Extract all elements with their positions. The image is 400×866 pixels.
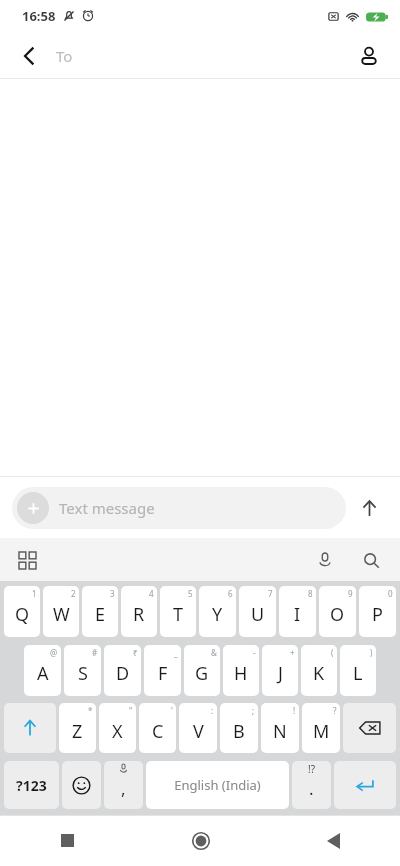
button[interactable]: 6 (199, 586, 236, 637)
staticText: * (88, 705, 93, 716)
button[interactable]: , (104, 761, 143, 809)
staticText: A (37, 661, 49, 686)
staticText: W (53, 602, 70, 627)
staticText: ' (171, 705, 173, 716)
button[interactable]: " (99, 703, 136, 753)
button[interactable]: - (223, 645, 259, 696)
staticText: O (330, 602, 345, 627)
button[interactable]: Emoji (62, 761, 101, 809)
staticText: ) (370, 647, 373, 658)
staticText: X (112, 719, 123, 744)
staticText: " (129, 705, 133, 716)
button[interactable]: Contacts (348, 35, 390, 77)
staticText: 6 (228, 588, 233, 599)
staticText: English (India) (174, 776, 261, 794)
staticText: I (294, 602, 301, 627)
staticText: 3 (110, 588, 115, 599)
button[interactable]: !? (292, 761, 331, 809)
staticText: G (195, 661, 209, 686)
staticText: P (372, 602, 383, 627)
staticText: K (313, 661, 325, 686)
button[interactable]: : (179, 703, 217, 753)
staticText: T (173, 602, 184, 627)
button[interactable]: Home (134, 815, 267, 866)
staticText: _ (174, 647, 178, 658)
staticText: L (353, 661, 363, 686)
staticText: - (253, 647, 256, 658)
button[interactable]: ; (220, 703, 258, 753)
button[interactable]: ?123 (4, 761, 59, 809)
staticText: 2 (71, 588, 76, 599)
button[interactable]: 8 (279, 586, 316, 637)
staticText: Q (15, 602, 30, 627)
staticText: ? (333, 705, 337, 716)
button[interactable]: Back (8, 35, 50, 77)
button[interactable]: ( (301, 645, 337, 696)
button[interactable]: & (184, 645, 220, 696)
button[interactable]: Send (346, 485, 392, 531)
button[interactable]: 4 (121, 586, 157, 637)
staticText: 5 (188, 588, 193, 599)
staticText: ! (293, 705, 296, 716)
button[interactable]: 5 (160, 586, 196, 637)
staticText: R (133, 602, 145, 627)
staticText: S (78, 661, 88, 686)
button[interactable]: Enter (334, 761, 396, 809)
staticText: D (116, 661, 130, 686)
button[interactable]: Recents (0, 815, 134, 866)
button[interactable]: 2 (43, 586, 79, 637)
staticText: 16:58 (22, 7, 56, 25)
staticText: U (251, 602, 265, 627)
staticText: ?123 (16, 776, 47, 795)
staticText: 9 (348, 588, 353, 599)
button[interactable]: # (64, 645, 101, 696)
staticText: N (273, 719, 287, 744)
staticText: Z (72, 719, 83, 744)
staticText: Y (212, 602, 223, 627)
button[interactable]: + (262, 645, 298, 696)
staticText: # (92, 647, 98, 658)
button[interactable]: Backspace (343, 703, 396, 753)
button[interactable]: ! (261, 703, 299, 753)
staticText: 7 (268, 588, 273, 599)
button[interactable]: 0 (359, 586, 396, 637)
staticText: J (278, 661, 283, 686)
button[interactable]: ' (139, 703, 176, 753)
button[interactable]: Text message (12, 487, 346, 529)
button[interactable]: 1 (4, 586, 40, 637)
staticText: H (234, 661, 248, 686)
staticText: 4 (149, 588, 154, 599)
staticText: 0 (388, 588, 393, 599)
button[interactable]: To (56, 34, 306, 78)
button[interactable]: English (India) (146, 761, 289, 809)
button[interactable]: Shift (4, 703, 56, 753)
staticText: C (152, 719, 164, 744)
staticText: V (193, 719, 204, 744)
button[interactable]: 7 (239, 586, 276, 637)
button[interactable]: ? (302, 703, 340, 753)
button[interactable]: Back (267, 815, 400, 866)
button[interactable]: Search (352, 541, 390, 579)
button[interactable]: ₹ (104, 645, 141, 696)
staticText: . (309, 777, 314, 800)
button[interactable]: 9 (319, 586, 356, 637)
staticText: 1 (32, 588, 37, 599)
button[interactable]: Keyboard options (8, 541, 46, 579)
staticText: 8 (308, 588, 313, 599)
staticText: , (121, 777, 126, 800)
staticText: ; (252, 705, 255, 716)
staticText: : (211, 705, 214, 716)
staticText: ₹ (133, 647, 138, 658)
button[interactable]: * (59, 703, 96, 753)
staticText: + (290, 647, 295, 658)
button[interactable]: ) (340, 645, 376, 696)
button[interactable]: _ (144, 645, 181, 696)
staticText: M (313, 719, 330, 744)
staticText: !? (308, 762, 316, 776)
button[interactable]: @ (24, 645, 61, 696)
button[interactable]: Voice input (306, 541, 344, 579)
staticText: B (233, 719, 245, 744)
staticText: ( (331, 647, 334, 658)
staticText: E (95, 602, 106, 627)
button[interactable]: 3 (82, 586, 118, 637)
